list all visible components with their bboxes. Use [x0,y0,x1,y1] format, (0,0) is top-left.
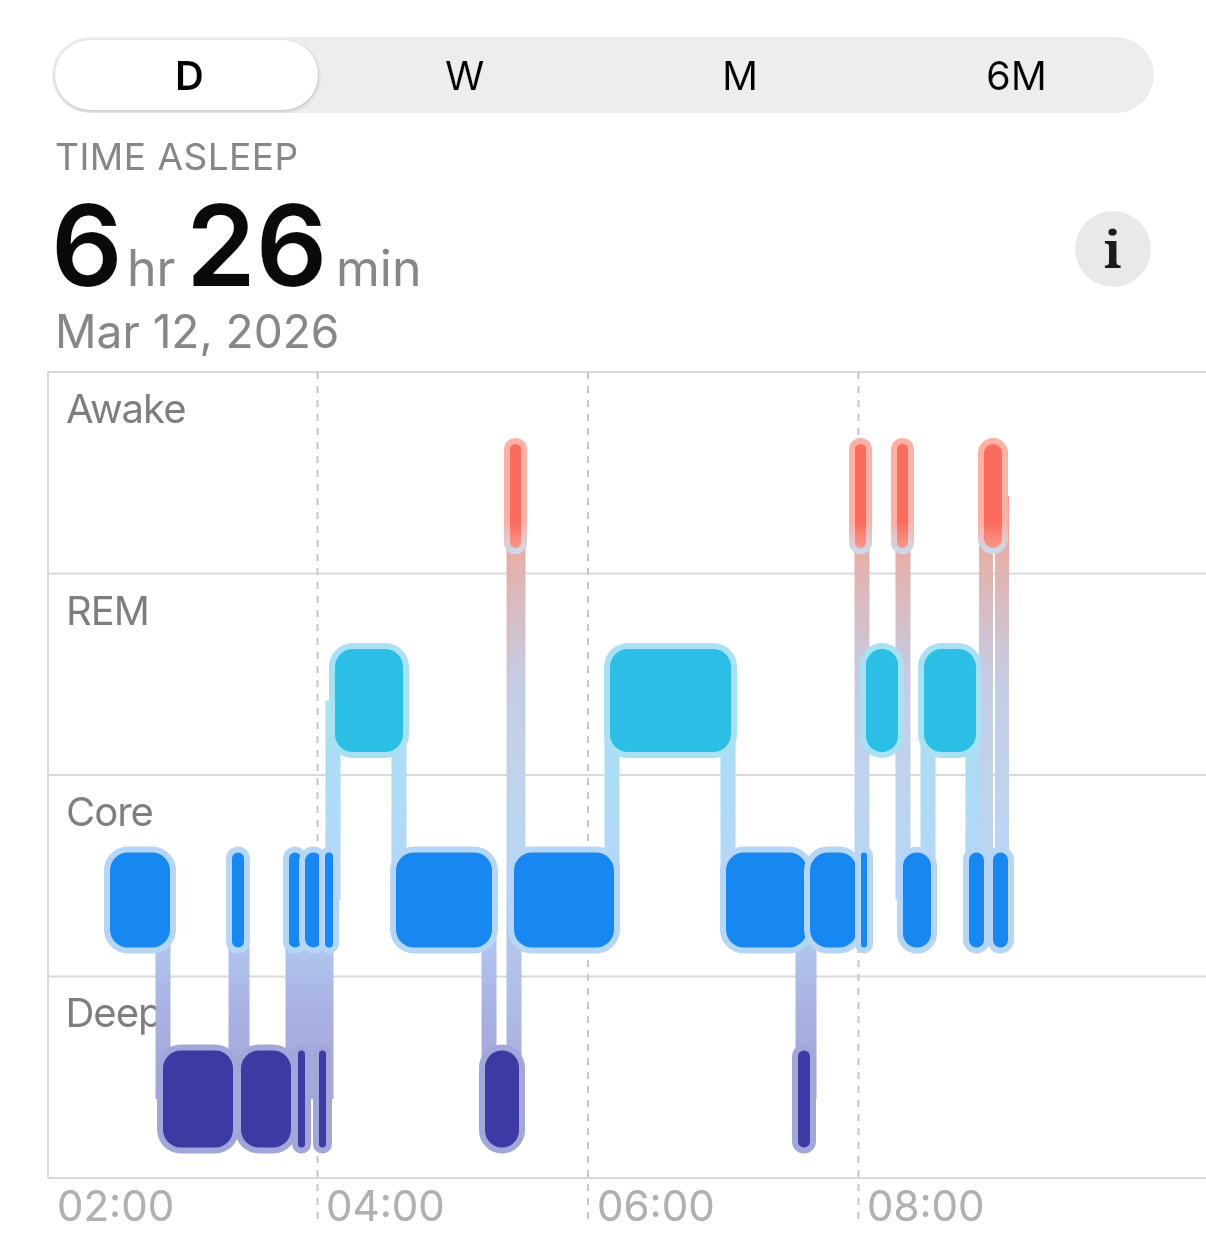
staticText: REM [66,586,149,634]
staticText: M [722,51,759,99]
staticText: 08:00 [867,1180,985,1231]
staticText: i [1104,215,1122,283]
staticText: Awake [66,384,186,432]
staticText: Mar 12, 2026 [55,303,340,359]
staticText: 6 [51,177,123,313]
staticText: Core [66,787,153,835]
button[interactable]: 6M [878,37,1154,113]
button[interactable]: i [1075,211,1151,287]
staticText: 26 [186,177,328,313]
staticText: 6M [986,51,1047,99]
staticText: Deep [66,988,162,1036]
staticText: 06:00 [597,1180,715,1231]
button[interactable]: M [602,37,878,113]
button[interactable]: D [52,37,327,113]
staticText: 04:00 [326,1180,445,1231]
button[interactable]: W [327,37,602,113]
staticText: hr [127,238,176,298]
staticText: D [175,51,204,99]
staticText: TIME ASLEEP [55,134,299,179]
staticText: 02:00 [57,1180,175,1231]
staticText: W [445,51,485,99]
staticText: min [336,238,422,298]
